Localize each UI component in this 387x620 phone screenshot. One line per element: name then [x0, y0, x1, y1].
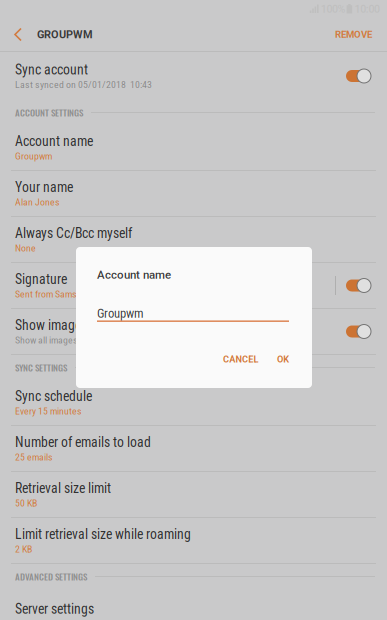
staticText: 2 KB: [15, 543, 32, 555]
staticText: Alan Jones: [15, 196, 60, 208]
button[interactable]: Sync account: [0, 52, 387, 100]
button[interactable]: Server settings: [0, 589, 387, 620]
staticText: Sync schedule: [15, 388, 92, 404]
staticText: Last synced on 05/01/2018 10:43: [15, 79, 152, 90]
button[interactable]: Always Cc/Bcc myself: [0, 217, 387, 262]
button[interactable]: Show images: [0, 309, 387, 354]
staticText: Show all images: [15, 334, 78, 346]
staticText: 25 emails: [15, 451, 53, 463]
staticText: Retrieval size limit: [15, 480, 111, 496]
staticText: CANCEL: [223, 354, 258, 365]
button[interactable]: Retrieval size limit: [0, 472, 387, 517]
button[interactable]: Limit retrieval size while roaming: [0, 518, 387, 563]
button[interactable]: Account name: [0, 125, 387, 170]
staticText: Your name: [15, 179, 73, 195]
button[interactable]: Signature: [0, 263, 387, 308]
staticText: Show images: [15, 317, 87, 333]
staticText: 100%: [321, 3, 346, 15]
staticText: Signature: [15, 271, 67, 287]
staticText: 10:00: [355, 3, 380, 15]
staticText: Always Cc/Bcc myself: [15, 225, 132, 241]
button[interactable]: Sync schedule: [0, 380, 387, 425]
staticText: REMOVE: [335, 29, 372, 40]
staticText: Account name: [15, 133, 93, 149]
button[interactable]: Number of emails to load: [0, 426, 387, 471]
staticText: Sync account: [15, 62, 88, 78]
staticText: None: [15, 242, 36, 254]
button[interactable]: Back: [0, 20, 93, 49]
staticText: ACCOUNT SETTINGS: [15, 106, 83, 119]
staticText: SYNC SETTINGS: [15, 361, 67, 374]
staticText: Groupwm: [15, 150, 52, 162]
staticText: GROUPWM: [37, 28, 93, 41]
button[interactable]: CANCEL: [214, 347, 267, 372]
staticText: 50 KB: [15, 497, 37, 509]
staticText: Every 15 minutes: [15, 405, 82, 417]
staticText: Server settings: [15, 601, 94, 617]
staticText: ADVANCED SETTINGS: [15, 570, 87, 583]
staticText: Groupwm: [97, 306, 144, 321]
staticText: Account name: [97, 268, 171, 281]
staticText: Limit retrieval size while roaming: [15, 526, 191, 542]
staticText: Sent from Samsung: [15, 288, 92, 300]
staticText: OK: [277, 354, 289, 365]
button[interactable]: Your name: [0, 171, 387, 216]
staticText: Number of emails to load: [15, 434, 151, 450]
button[interactable]: OK: [268, 347, 298, 372]
button[interactable]: REMOVE: [335, 21, 387, 48]
